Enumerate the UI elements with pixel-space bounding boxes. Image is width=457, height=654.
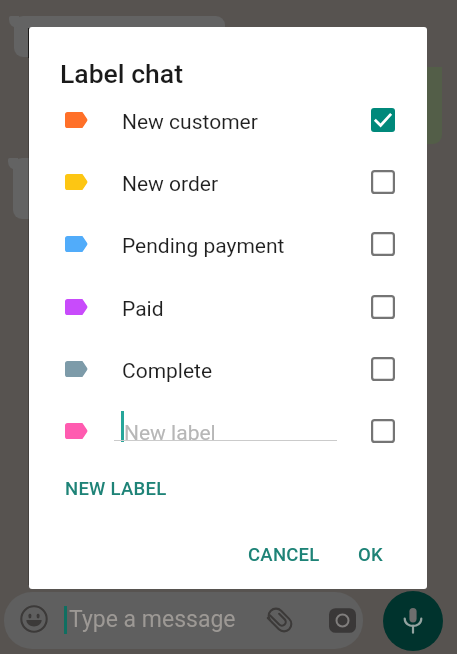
- button[interactable]: Paid: [29, 276, 427, 338]
- button[interactable]: Record voice message: [383, 591, 443, 651]
- button[interactable]: Toggle Paid: [363, 287, 403, 327]
- staticText: OK: [358, 544, 383, 566]
- button[interactable]: Toggle New customer: [363, 100, 403, 140]
- staticText: New order: [122, 172, 219, 197]
- button[interactable]: Toggle Complete: [363, 349, 403, 389]
- button[interactable]: Toggle Pending payment: [363, 224, 403, 264]
- staticText: Label chat: [60, 58, 183, 89]
- button[interactable]: Toggle New order: [363, 162, 403, 202]
- button[interactable]: Complete: [29, 338, 427, 400]
- button[interactable]: New label: [29, 400, 427, 462]
- button[interactable]: Toggle new label: [363, 411, 403, 451]
- button[interactable]: Pending payment: [29, 213, 427, 275]
- button[interactable]: Attach: [264, 604, 296, 636]
- button[interactable]: Camera: [326, 604, 358, 636]
- button[interactable]: CANCEL: [238, 535, 330, 575]
- staticText: Complete: [122, 359, 213, 384]
- staticText: Paid: [122, 297, 164, 322]
- staticText: Type a message: [69, 606, 236, 633]
- button[interactable]: New customer: [29, 89, 427, 151]
- button[interactable]: Emoji: [17, 602, 51, 636]
- button[interactable]: New order: [29, 151, 427, 213]
- staticText: NEW LABEL: [65, 478, 167, 500]
- staticText: New customer: [122, 110, 258, 135]
- button[interactable]: OK: [348, 535, 393, 575]
- button[interactable]: NEW LABEL: [55, 469, 177, 509]
- button[interactable]: Emoji: [4, 592, 363, 649]
- staticText: CANCEL: [248, 544, 320, 566]
- staticText: Pending payment: [122, 234, 285, 259]
- staticText: New label: [124, 421, 216, 446]
